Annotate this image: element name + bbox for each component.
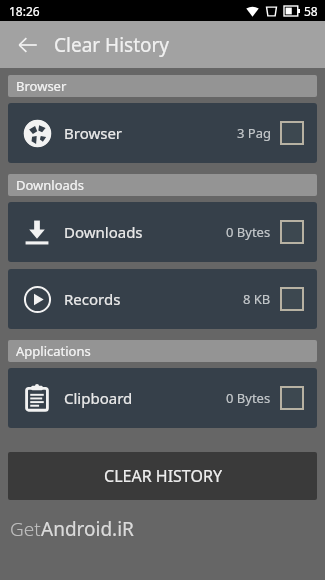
staticText: Records	[64, 289, 121, 309]
button[interactable]: Select Downloads	[281, 221, 303, 243]
staticText: 3 Pag	[237, 124, 271, 142]
staticText: 18:26	[9, 3, 40, 19]
staticText: Applications	[16, 342, 91, 360]
staticText: Downloads	[16, 176, 85, 194]
staticText: 58	[304, 3, 318, 19]
staticText: Android.iR	[41, 516, 134, 542]
button[interactable]: Browser	[8, 103, 317, 163]
staticText: Clipboard	[64, 388, 133, 408]
button[interactable]: Select Records	[281, 288, 303, 310]
staticText: Clear History	[54, 32, 170, 58]
staticText: Browser	[64, 123, 123, 143]
button[interactable]: Clipboard	[8, 368, 317, 428]
staticText: 0 Bytes	[226, 389, 271, 407]
button[interactable]: CLEAR HISTORY	[8, 452, 317, 500]
staticText: Get	[10, 516, 41, 542]
button[interactable]: Downloads	[8, 202, 317, 262]
button[interactable]: Records	[8, 269, 317, 329]
staticText: 8 KB	[243, 290, 271, 308]
staticText: Browser	[16, 77, 67, 95]
button[interactable]: Select Clipboard	[281, 387, 303, 409]
staticText: 0 Bytes	[226, 223, 271, 241]
button[interactable]: Select Browser	[281, 122, 303, 144]
button[interactable]: Back	[8, 25, 48, 65]
staticText: CLEAR HISTORY	[104, 465, 222, 487]
staticText: Downloads	[64, 222, 143, 242]
